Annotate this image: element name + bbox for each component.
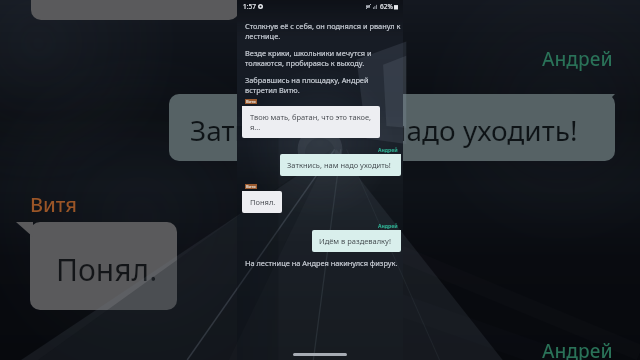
- staticText: Андрей: [542, 338, 613, 360]
- button[interactable]: Заткнись, нам надо уходить!: [280, 154, 401, 176]
- button[interactable]: Идём в раздевалку!: [312, 230, 401, 252]
- staticText: Столкнув её с себя, он поднялся и рванул…: [245, 21, 401, 41]
- staticText: Твою мать, братан, что это такое, я...: [250, 112, 374, 132]
- staticText: Витя: [246, 99, 256, 104]
- staticText: Андрей: [542, 46, 613, 72]
- staticText: Витя: [246, 184, 256, 189]
- staticText: Везде крики, школьники мечутся и толкают…: [245, 48, 401, 68]
- button[interactable]: Понял.: [242, 191, 282, 213]
- staticText: На лестнице на Андрея накинулся физрук.: [245, 258, 398, 268]
- staticText: Понял.: [56, 249, 158, 290]
- staticText: Заткнись, нам надо уходить!: [190, 111, 578, 149]
- staticText: Понял.: [250, 197, 276, 207]
- staticText: 62%: [380, 2, 393, 11]
- staticText: Заткнись, нам надо уходить!: [287, 160, 391, 170]
- staticText: Витя: [30, 191, 78, 218]
- button[interactable]: Твою мать, братан, что это такое, я...: [242, 106, 380, 138]
- staticText: Забравшись на площадку, Андрей встретил …: [245, 75, 401, 95]
- staticText: Андрей: [378, 147, 398, 154]
- staticText: Андрей: [378, 223, 398, 230]
- staticText: Идём в раздевалку!: [319, 236, 391, 246]
- staticText: 1:57: [243, 2, 256, 11]
